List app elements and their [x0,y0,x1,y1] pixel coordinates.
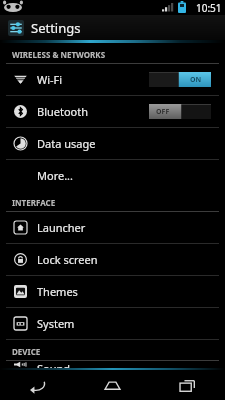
staticText: ON [190,75,202,85]
staticText: More... [37,168,74,183]
staticText: 10:51 [196,1,222,15]
staticText: Wi-Fi [37,72,63,87]
button[interactable]: Back [0,370,75,400]
button[interactable]: Data usage [0,128,225,159]
staticText: System [37,316,75,331]
staticText: WIRELESS & NETWORKS [12,49,106,60]
staticText: Settings [31,19,81,37]
staticText: Bluetooth [37,104,89,119]
button[interactable]: ON [149,72,211,87]
staticText: INTERFACE [12,197,56,208]
staticText: DEVICE [12,346,41,357]
button[interactable]: Home [75,370,150,400]
staticText: Themes [37,284,78,299]
button[interactable]: Themes [0,276,225,307]
button[interactable]: Launcher [0,212,225,243]
button[interactable]: Sound [0,361,225,368]
staticText: Lock screen [37,252,98,267]
button[interactable]: OFF [149,104,211,119]
button[interactable]: More... [0,160,225,191]
button[interactable]: Recents [150,370,225,400]
button[interactable]: Lock screen [0,244,225,275]
button[interactable]: Wi-Fi [0,64,225,95]
button[interactable]: Bluetooth [0,96,225,127]
button[interactable]: System [0,308,225,339]
staticText: Launcher [37,220,86,235]
staticText: Data usage [37,136,96,151]
other: Settings [8,20,24,36]
staticText: OFF [156,107,170,117]
staticText: Sound [37,361,71,368]
button[interactable]: Settings [0,15,225,40]
